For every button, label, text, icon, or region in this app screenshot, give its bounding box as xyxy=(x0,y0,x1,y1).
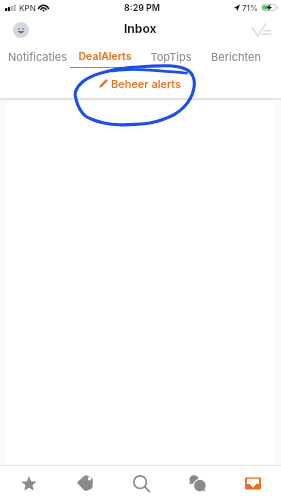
staticText: TopTips xyxy=(150,50,192,63)
button[interactable]: Inbox xyxy=(225,466,281,500)
button[interactable]: Mark all as read xyxy=(252,23,271,37)
button[interactable]: Deals xyxy=(57,466,113,500)
button[interactable]: Search xyxy=(113,466,169,500)
button[interactable]: DealAlerts xyxy=(70,44,137,68)
button[interactable]: Favorites xyxy=(0,466,57,500)
button[interactable]: Profile xyxy=(13,22,29,38)
staticText: Inbox xyxy=(124,21,157,36)
staticText: DealAlerts xyxy=(78,50,132,63)
button[interactable]: Notificaties xyxy=(3,44,70,68)
button[interactable]: TopTips xyxy=(137,44,204,68)
button[interactable]: Beheer alerts xyxy=(99,77,181,90)
staticText: 8:29 PM xyxy=(124,2,160,13)
button[interactable]: Berichten xyxy=(204,44,271,68)
staticText: 71% xyxy=(242,3,258,13)
button[interactable]: Messages xyxy=(169,466,225,500)
staticText: KPN xyxy=(19,3,36,13)
staticText: Notificaties xyxy=(8,50,67,63)
staticText: Beheer alerts xyxy=(111,77,181,90)
staticText: Berichten xyxy=(211,50,261,63)
